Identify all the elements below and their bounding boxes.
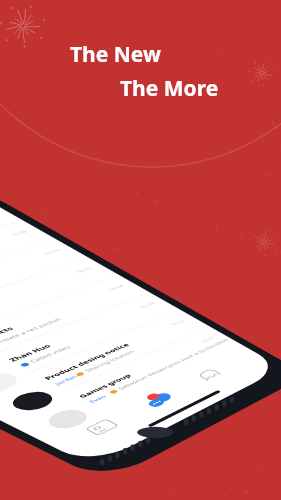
staticText: The More	[120, 74, 219, 103]
staticText: The New	[70, 40, 161, 69]
